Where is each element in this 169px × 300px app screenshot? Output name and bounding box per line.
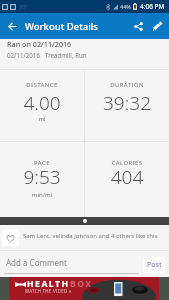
staticText: 02/11/2016 [7, 51, 40, 59]
staticText: BOX [70, 278, 93, 290]
staticText: mi [0, 115, 84, 123]
button[interactable]: Post [143, 257, 165, 273]
staticText: CALORIES [85, 159, 169, 167]
staticText: 9:53 [0, 164, 84, 190]
staticText: Workout Details [25, 20, 98, 33]
staticText: Treadmill, Run [45, 51, 87, 59]
button[interactable]: HealthBox advertisement [9, 277, 159, 300]
button[interactable]: DURATION [85, 70, 169, 141]
staticText: Add a Comment [6, 257, 67, 268]
staticText: Sam Lent, velinda johnson and 4 others l… [23, 232, 158, 240]
staticText: 39:32 [85, 90, 169, 116]
staticText: 4:06 PM [140, 2, 165, 11]
staticText: Post [147, 260, 162, 270]
staticText: WATCH THE VIDEO » [25, 288, 72, 294]
button[interactable]: Like [2, 230, 19, 246]
button[interactable]: Back [0, 14, 24, 38]
button[interactable]: DISTANCE [0, 70, 84, 141]
staticText: DISTANCE [0, 81, 84, 89]
staticText: Ran on 02/11/2016 [7, 39, 72, 49]
button[interactable]: Share [128, 13, 148, 39]
staticText: DURATION [85, 81, 169, 89]
staticText: 44% [120, 3, 131, 10]
staticText: HEALTH [27, 278, 70, 290]
staticText: PACE [0, 159, 84, 167]
staticText: 30° [19, 3, 28, 10]
staticText: 404 [85, 164, 169, 190]
staticText: 4.00 [0, 90, 84, 116]
button[interactable]: PACE [0, 142, 84, 217]
button[interactable]: Edit [148, 13, 168, 39]
staticText: min/mi [0, 191, 84, 199]
button[interactable]: CALORIES [85, 142, 169, 217]
